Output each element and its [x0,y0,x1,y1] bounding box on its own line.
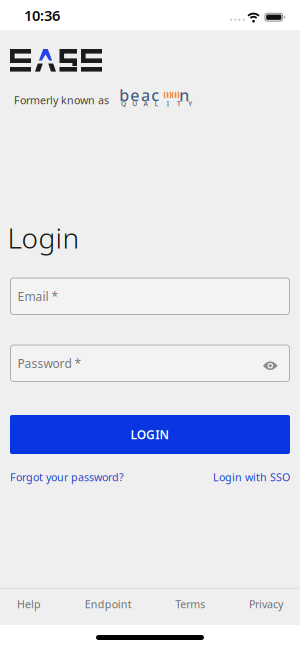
button[interactable]: Password * [10,344,290,382]
staticText: e [130,84,139,106]
staticText: Privacy [249,597,283,611]
staticText: Help [17,597,41,611]
button[interactable]: Privacy [249,597,283,611]
button[interactable]: Endpoint [85,597,132,611]
staticText: L [155,99,159,108]
staticText: Login [7,219,79,256]
button[interactable]: Login with SSO [213,470,290,484]
staticText: Password * [17,355,81,371]
staticText: Q [121,99,126,108]
staticText: A [143,99,147,108]
staticText: Terms [175,597,205,611]
button[interactable]: Forgot your password? [10,470,124,484]
staticText: Endpoint [85,597,132,611]
staticText: Formerly known as [14,93,109,107]
staticText: U [132,99,137,108]
staticText: Y [188,99,192,108]
button[interactable]: Help [17,597,41,611]
staticText: Email * [17,288,58,304]
staticText: c [151,84,159,106]
staticText: Forgot your password? [10,470,124,484]
button[interactable]: LOGIN [10,415,290,454]
staticText: I [167,99,169,108]
button[interactable]: Terms [175,597,205,611]
staticText: LOGIN [131,426,169,442]
staticText: b [119,84,129,106]
staticText: n [179,84,189,106]
staticText: a [141,84,150,106]
button[interactable]: Email * [10,277,290,315]
staticText: T [177,99,181,108]
staticText: Login with SSO [213,470,290,484]
staticText: 10:36 [24,5,60,25]
